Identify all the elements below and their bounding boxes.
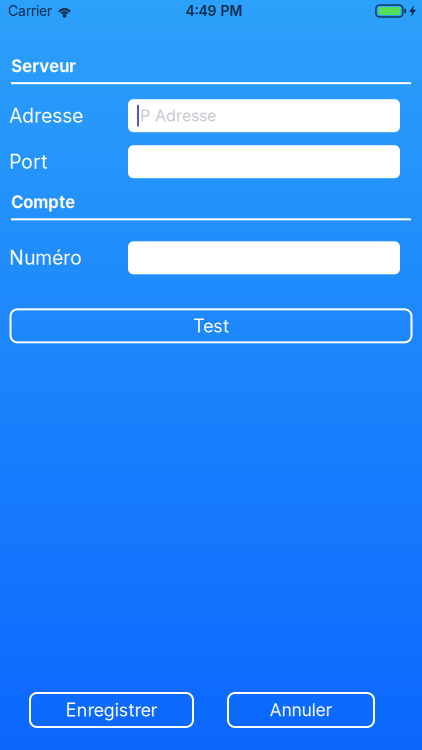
- button[interactable]: Enregistrer: [30, 693, 193, 727]
- button[interactable]: P Adresse: [128, 99, 400, 132]
- staticText: Carrier: [8, 2, 52, 19]
- staticText: Serveur: [11, 56, 76, 76]
- staticText: Enregistrer: [65, 699, 157, 721]
- staticText: Adresse: [9, 104, 83, 127]
- staticText: Numéro: [9, 246, 82, 269]
- staticText: Compte: [11, 192, 75, 212]
- staticText: Port: [9, 150, 47, 173]
- staticText: P Adresse: [140, 106, 216, 125]
- staticText: 4:49 PM: [185, 2, 242, 19]
- button[interactable]: [128, 241, 400, 274]
- button[interactable]: [128, 145, 400, 178]
- staticText: Test: [193, 315, 229, 337]
- button[interactable]: Test: [10, 309, 411, 342]
- button[interactable]: Annuler: [228, 693, 374, 727]
- staticText: Annuler: [269, 699, 332, 720]
